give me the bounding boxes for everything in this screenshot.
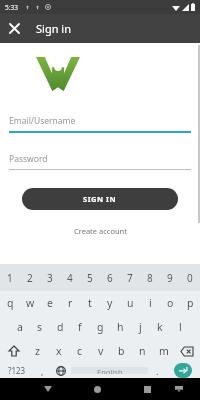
- button[interactable]: Back: [32, 378, 63, 400]
- staticText: t: [88, 296, 92, 310]
- staticText: e: [47, 296, 53, 310]
- button[interactable]: 0: [180, 264, 200, 291]
- button[interactable]: e: [40, 291, 60, 315]
- button[interactable]: Period: [148, 363, 166, 378]
- staticText: g: [97, 320, 104, 334]
- staticText: f: [78, 320, 82, 334]
- staticText: Sign in: [36, 21, 71, 36]
- button[interactable]: y: [100, 291, 120, 315]
- button[interactable]: l: [170, 315, 190, 339]
- staticText: w: [26, 296, 35, 310]
- button[interactable]: Change language: [51, 363, 71, 378]
- button[interactable]: z: [27, 339, 48, 363]
- staticText: b: [118, 344, 125, 358]
- staticText: d: [57, 320, 64, 334]
- staticText: 5: [87, 271, 93, 285]
- staticText: 4: [67, 271, 73, 285]
- button[interactable]: n: [132, 339, 153, 363]
- button[interactable]: Close: [0, 14, 29, 43]
- button[interactable]: 6: [100, 264, 120, 291]
- staticText: Email/Username: [9, 115, 76, 127]
- button[interactable]: 8: [140, 264, 160, 291]
- button[interactable]: j: [130, 315, 150, 339]
- staticText: s: [37, 320, 43, 334]
- button[interactable]: Hide keyboard: [163, 378, 194, 400]
- button[interactable]: 5: [80, 264, 100, 291]
- button[interactable]: Comma: [33, 363, 51, 378]
- staticText: 1: [7, 271, 13, 285]
- staticText: l: [179, 320, 182, 334]
- staticText: 8: [147, 271, 153, 285]
- button[interactable]: o: [160, 291, 180, 315]
- staticText: .: [156, 365, 159, 377]
- button[interactable]: r: [60, 291, 80, 315]
- staticText: n: [139, 344, 146, 358]
- button[interactable]: 4: [60, 264, 80, 291]
- button[interactable]: 3: [40, 264, 60, 291]
- button[interactable]: English: [71, 367, 148, 374]
- button[interactable]: 9: [160, 264, 180, 291]
- staticText: ?123: [8, 365, 26, 376]
- button[interactable]: k: [150, 315, 170, 339]
- button[interactable]: ?123: [0, 363, 33, 378]
- staticText: SIGN IN: [83, 194, 117, 204]
- button[interactable]: Email/Username: [9, 114, 191, 133]
- staticText: y: [107, 296, 113, 310]
- button[interactable]: Shift: [0, 339, 27, 363]
- staticText: Create account: [74, 226, 127, 236]
- button[interactable]: Create account: [66, 223, 135, 239]
- button[interactable]: d: [50, 315, 70, 339]
- staticText: 6: [107, 271, 113, 285]
- button[interactable]: 7: [120, 264, 140, 291]
- button[interactable]: p: [180, 291, 200, 315]
- button[interactable]: c: [69, 339, 90, 363]
- button[interactable]: i: [140, 291, 160, 315]
- staticText: 9: [167, 271, 173, 285]
- staticText: j: [139, 320, 142, 334]
- button[interactable]: Home: [82, 378, 113, 400]
- staticText: x: [56, 344, 62, 358]
- staticText: z: [35, 344, 40, 358]
- staticText: q: [7, 296, 14, 310]
- staticText: i: [149, 296, 152, 310]
- button[interactable]: g: [90, 315, 110, 339]
- staticText: 7: [127, 271, 133, 285]
- button[interactable]: h: [110, 315, 130, 339]
- staticText: h: [117, 320, 124, 334]
- staticText: 0: [187, 271, 193, 285]
- staticText: m: [159, 344, 169, 358]
- button[interactable]: q: [0, 291, 20, 315]
- button[interactable]: w: [20, 291, 40, 315]
- staticText: p: [187, 296, 194, 310]
- button[interactable]: f: [70, 315, 90, 339]
- button[interactable]: 1: [0, 264, 20, 291]
- button[interactable]: s: [30, 315, 50, 339]
- staticText: o: [167, 296, 174, 310]
- staticText: k: [157, 320, 163, 334]
- button[interactable]: 2: [20, 264, 40, 291]
- button[interactable]: Recents: [132, 378, 163, 400]
- staticText: Password: [9, 153, 48, 165]
- staticText: a: [17, 320, 23, 334]
- staticText: 5:33: [5, 3, 18, 12]
- button[interactable]: v: [90, 339, 111, 363]
- button[interactable]: SIGN IN: [22, 188, 178, 210]
- button[interactable]: Enter: [166, 363, 200, 378]
- button[interactable]: Password: [9, 152, 191, 170]
- button[interactable]: x: [48, 339, 69, 363]
- button[interactable]: Backspace: [174, 339, 200, 363]
- button[interactable]: t: [80, 291, 100, 315]
- staticText: 2: [27, 271, 33, 285]
- staticText: English: [97, 367, 123, 374]
- staticText: ,: [41, 365, 44, 377]
- button[interactable]: b: [111, 339, 132, 363]
- staticText: u: [127, 296, 134, 310]
- staticText: r: [68, 296, 73, 310]
- staticText: v: [98, 344, 104, 358]
- button[interactable]: u: [120, 291, 140, 315]
- button[interactable]: a: [10, 315, 30, 339]
- staticText: 3: [47, 271, 53, 285]
- button[interactable]: m: [153, 339, 174, 363]
- staticText: c: [77, 344, 83, 358]
